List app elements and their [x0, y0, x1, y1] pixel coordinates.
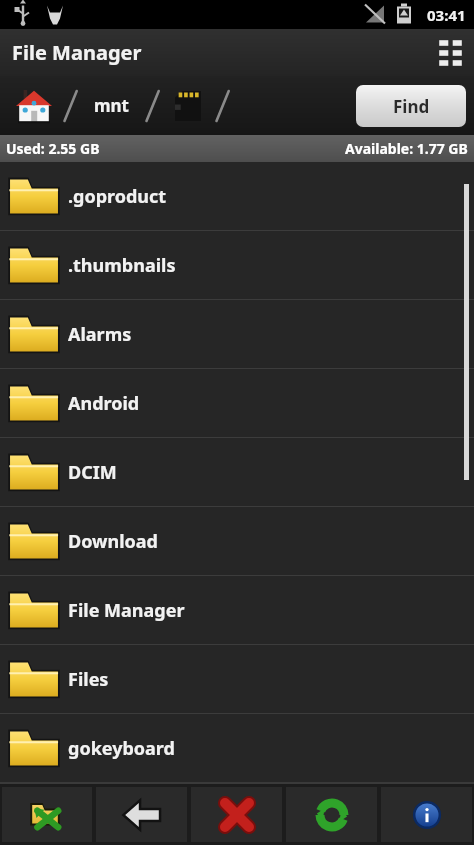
staticText: Download: [68, 529, 158, 554]
button[interactable]: Android: [0, 369, 474, 437]
button[interactable]: Alarms: [0, 300, 474, 368]
staticText: Find: [393, 95, 430, 118]
button[interactable]: Grid view: [426, 29, 474, 76]
staticText: 03:41: [427, 5, 466, 25]
button[interactable]: New folder: [2, 787, 92, 842]
button[interactable]: .goproduct: [0, 162, 474, 230]
button[interactable]: mnt: [84, 86, 140, 125]
staticText: Files: [68, 667, 109, 692]
staticText: Used: 2.55 GB: [6, 139, 100, 158]
button[interactable]: .thumbnails: [0, 231, 474, 299]
button[interactable]: Refresh: [286, 787, 377, 842]
button[interactable]: Home: [10, 82, 58, 130]
staticText: mnt: [94, 94, 130, 117]
staticText: Available: 1.77 GB: [345, 139, 468, 158]
staticText: .thumbnails: [68, 253, 176, 278]
staticText: File Manager: [12, 39, 142, 66]
button[interactable]: Delete: [191, 787, 282, 842]
button[interactable]: Find: [356, 85, 466, 127]
button[interactable]: gokeyboard: [0, 714, 474, 782]
staticText: Android: [68, 391, 140, 416]
staticText: gokeyboard: [68, 736, 175, 761]
button[interactable]: DCIM: [0, 438, 474, 506]
staticText: .goproduct: [68, 184, 167, 209]
button[interactable]: Download: [0, 507, 474, 575]
staticText: DCIM: [68, 460, 117, 485]
button[interactable]: Info: [381, 787, 472, 842]
button[interactable]: SD card: [166, 84, 210, 128]
button[interactable]: Files: [0, 645, 474, 713]
button[interactable]: File Manager: [0, 576, 474, 644]
staticText: File Manager: [68, 598, 185, 623]
staticText: Alarms: [68, 322, 132, 347]
button[interactable]: Back: [96, 787, 187, 842]
